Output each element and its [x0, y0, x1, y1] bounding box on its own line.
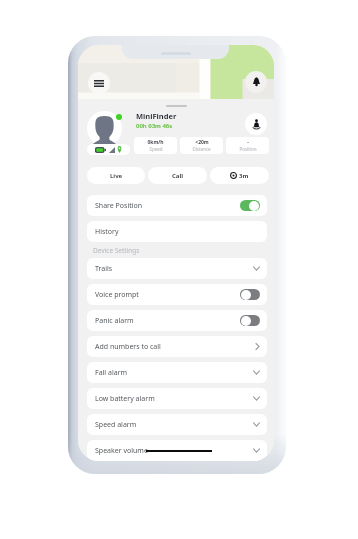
button[interactable]: Share Position: [87, 195, 267, 216]
staticText: Live: [110, 172, 123, 180]
button[interactable]: Voice prompt: [87, 284, 267, 305]
button[interactable]: 0km/h: [134, 137, 177, 154]
staticText: MiniFinder: [136, 111, 177, 121]
staticText: Voice prompt: [95, 290, 139, 300]
button[interactable]: History: [87, 221, 267, 242]
staticText: Speed alarm: [95, 420, 137, 430]
button[interactable]: Menu: [88, 72, 110, 94]
button[interactable]: On: [240, 200, 260, 211]
button[interactable]: Call: [148, 167, 207, 184]
staticText: History: [95, 227, 119, 237]
button[interactable]: Low battery alarm: [87, 388, 267, 409]
staticText: Speed: [149, 146, 163, 152]
staticText: Fall alarm: [95, 368, 128, 378]
button[interactable]: 3m: [210, 167, 269, 184]
button[interactable]: Off: [240, 289, 260, 300]
staticText: <20m: [195, 139, 209, 146]
staticText: Call: [172, 172, 184, 180]
staticText: Share Position: [95, 201, 143, 211]
staticText: Low battery alarm: [95, 394, 155, 404]
staticText: Position: [239, 146, 257, 152]
button[interactable]: Add numbers to call: [87, 336, 267, 357]
button[interactable]: Panic alarm: [87, 310, 267, 331]
button[interactable]: Trails: [87, 258, 267, 279]
button[interactable]: Live: [87, 167, 145, 184]
staticText: Add numbers to call: [95, 342, 161, 352]
button[interactable]: Off: [240, 315, 260, 326]
staticText: Distance: [192, 146, 211, 152]
staticText: Device Settings: [93, 246, 140, 255]
staticText: 00h 03m 46s: [136, 122, 173, 130]
staticText: Panic alarm: [95, 316, 134, 326]
button[interactable]: <20m: [180, 137, 223, 154]
staticText: 0km/h: [147, 139, 164, 146]
staticText: Trails: [95, 264, 113, 274]
staticText: Speaker volume: [95, 446, 148, 456]
staticText: -: [247, 139, 249, 146]
button[interactable]: Fall alarm: [87, 362, 267, 383]
button[interactable]: -: [226, 137, 269, 154]
button[interactable]: Speed alarm: [87, 414, 267, 435]
button[interactable]: Street view: [245, 113, 267, 135]
staticText: 3m: [239, 172, 249, 180]
button[interactable]: Speaker volume: [87, 440, 267, 461]
button[interactable]: Notifications: [245, 71, 267, 93]
